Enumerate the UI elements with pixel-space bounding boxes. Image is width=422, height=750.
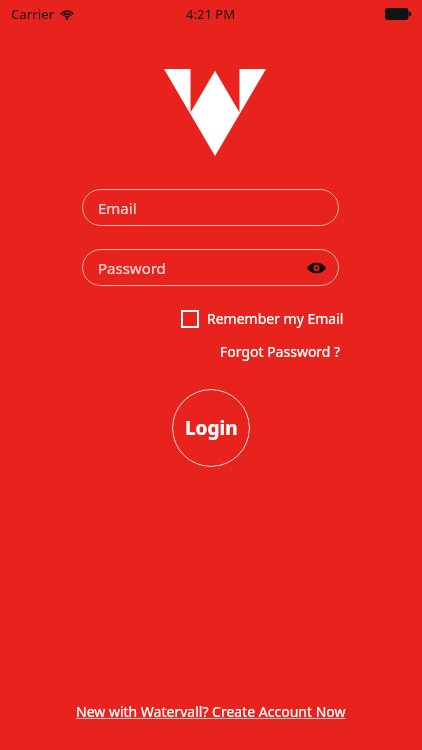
- staticText: Remember my Email: [207, 309, 344, 328]
- button[interactable]: Show password: [302, 254, 330, 282]
- button[interactable]: Remember my Email: [179, 307, 346, 330]
- staticText: Email: [98, 198, 137, 218]
- button[interactable]: Password: [82, 249, 339, 286]
- staticText: New with Watervall? Create Account Now: [76, 702, 346, 721]
- button[interactable]: Login: [172, 389, 250, 467]
- staticText: Forgot Password ?: [220, 342, 341, 361]
- button[interactable]: New with Watervall? Create Account Now: [70, 699, 352, 724]
- button[interactable]: Forgot Password ?: [216, 339, 345, 364]
- staticText: Carrier: [11, 5, 55, 23]
- button[interactable]: Email: [82, 189, 339, 226]
- staticText: 4:21 PM: [186, 5, 236, 23]
- staticText: Login: [185, 415, 238, 441]
- staticText: Password: [98, 258, 166, 278]
